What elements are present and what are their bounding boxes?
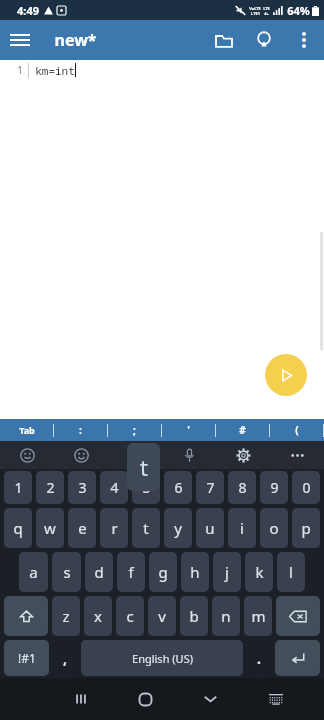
button[interactable]: Recent apps xyxy=(48,678,113,720)
staticText: b xyxy=(189,606,199,626)
staticText: km=int xyxy=(35,63,75,78)
button[interactable]: d xyxy=(85,552,113,592)
button[interactable]: Enter xyxy=(275,640,320,676)
button[interactable]: m xyxy=(244,596,272,636)
button[interactable]: 4 xyxy=(100,471,128,504)
button[interactable]: ; xyxy=(108,419,161,441)
staticText: 9 xyxy=(270,478,279,497)
button[interactable]: 1 xyxy=(4,471,32,504)
button[interactable]: n xyxy=(212,596,240,636)
button[interactable]: Open file xyxy=(204,20,244,60)
button[interactable]: ( xyxy=(270,419,323,441)
button[interactable]: Emoji xyxy=(0,441,54,469)
staticText: i xyxy=(240,518,244,538)
button[interactable]: Clipboard xyxy=(108,441,162,469)
staticText: y xyxy=(174,518,182,538)
staticText: 4+ xyxy=(264,11,269,16)
staticText: e xyxy=(78,518,87,538)
button[interactable]: y xyxy=(164,508,192,548)
staticText: f xyxy=(128,562,134,582)
button[interactable]: More options xyxy=(284,20,324,60)
button[interactable]: c xyxy=(116,596,144,636)
staticText: p xyxy=(301,518,311,538)
staticText: r xyxy=(111,518,118,538)
button[interactable]: Change keyboard xyxy=(243,678,308,720)
button[interactable]: 5 xyxy=(132,471,160,504)
button[interactable]: q xyxy=(4,508,32,548)
button[interactable]: 7 xyxy=(196,471,224,504)
staticText: a xyxy=(29,562,38,582)
button[interactable]: Open navigation menu xyxy=(0,20,40,60)
button[interactable]: a xyxy=(19,552,48,592)
button[interactable]: x xyxy=(84,596,112,636)
button[interactable]: Hide keyboard xyxy=(178,678,243,720)
button[interactable]: ' xyxy=(162,419,215,441)
staticText: o xyxy=(269,518,279,538)
staticText: English (US) xyxy=(132,651,193,666)
staticText: new* xyxy=(54,29,97,51)
button[interactable]: w xyxy=(36,508,64,548)
button[interactable]: !#1 xyxy=(4,640,49,676)
button[interactable]: s xyxy=(52,552,81,592)
staticText: 0 xyxy=(302,478,311,497)
staticText: ' xyxy=(187,423,190,437)
button[interactable]: u xyxy=(196,508,224,548)
staticText: t xyxy=(143,518,149,538)
button[interactable]: j xyxy=(213,552,241,592)
button[interactable]: l xyxy=(277,552,305,592)
button[interactable]: 8 xyxy=(228,471,256,504)
button[interactable]: Stickers xyxy=(54,441,108,469)
button[interactable]: g xyxy=(149,552,177,592)
button[interactable]: Keyboard settings xyxy=(216,441,270,469)
button[interactable]: h xyxy=(181,552,209,592)
button[interactable]: o xyxy=(260,508,288,548)
staticText: u xyxy=(205,518,215,538)
button[interactable]: k xyxy=(245,552,273,592)
button[interactable]: r xyxy=(100,508,128,548)
button[interactable]: 6 xyxy=(164,471,192,504)
staticText: . xyxy=(257,649,261,668)
button[interactable]: 0 xyxy=(292,471,320,504)
staticText: t xyxy=(140,452,148,482)
staticText: 7 xyxy=(206,478,215,497)
button[interactable]: 3 xyxy=(68,471,96,504)
button[interactable]: Home xyxy=(113,678,178,720)
staticText: , xyxy=(63,649,67,668)
button[interactable]: 2 xyxy=(36,471,64,504)
staticText: : xyxy=(79,423,82,437)
button[interactable]: , xyxy=(53,640,77,676)
staticText: l xyxy=(289,562,293,582)
staticText: w xyxy=(44,518,56,538)
button[interactable]: More options xyxy=(270,441,324,469)
button[interactable]: Tab xyxy=(0,419,53,441)
button[interactable]: 9 xyxy=(260,471,288,504)
staticText: 3 xyxy=(78,478,87,497)
staticText: !#1 xyxy=(18,650,36,666)
button[interactable]: f xyxy=(117,552,145,592)
staticText: g xyxy=(158,562,168,582)
button[interactable]: Voice input xyxy=(162,441,216,469)
button[interactable]: e xyxy=(68,508,96,548)
staticText: q xyxy=(13,518,23,538)
button[interactable]: # xyxy=(216,419,269,441)
button[interactable]: p xyxy=(292,508,320,548)
staticText: 6 xyxy=(174,478,183,497)
button[interactable]: z xyxy=(52,596,80,636)
button[interactable]: b xyxy=(180,596,208,636)
button[interactable]: : xyxy=(54,419,107,441)
staticText: x xyxy=(94,606,102,626)
button[interactable]: Backspace xyxy=(276,596,320,636)
staticText: v xyxy=(158,606,166,626)
button[interactable]: English (US) xyxy=(81,640,243,676)
button[interactable]: Shift xyxy=(4,596,48,636)
button[interactable]: Run xyxy=(265,354,307,396)
staticText: c xyxy=(126,606,134,626)
staticText: VoLTE xyxy=(249,6,261,11)
button[interactable]: i xyxy=(228,508,256,548)
button[interactable]: Hints xyxy=(244,20,284,60)
button[interactable]: t xyxy=(132,508,160,548)
staticText: ( xyxy=(295,423,299,437)
button[interactable]: . xyxy=(247,640,271,676)
button[interactable]: v xyxy=(148,596,176,636)
staticText: z xyxy=(62,606,70,626)
